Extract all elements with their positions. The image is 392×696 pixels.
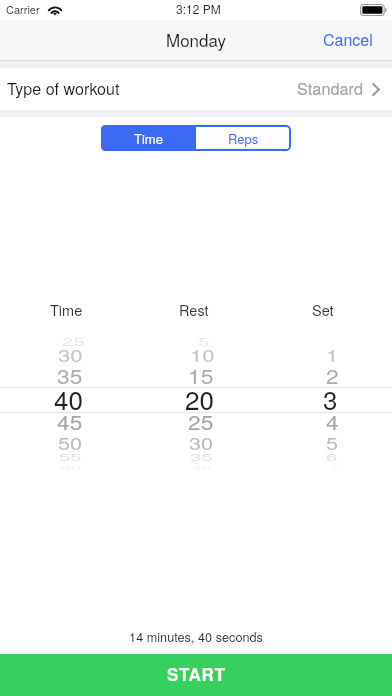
staticText: 3 xyxy=(323,380,338,417)
staticText: 14 minutes, 40 seconds xyxy=(0,627,392,645)
staticText: Time xyxy=(50,299,83,320)
staticText: Time xyxy=(134,129,163,148)
staticText: 45 xyxy=(57,407,83,436)
staticText: Type of workout xyxy=(7,77,120,100)
staticText: 20 xyxy=(185,380,214,417)
staticText: Reps xyxy=(228,129,259,148)
staticText: Cancel xyxy=(323,28,373,51)
staticText: 3:12 PM xyxy=(176,0,221,17)
staticText: 55 xyxy=(59,450,82,464)
staticText: 7 xyxy=(328,463,339,471)
staticText: 5 xyxy=(198,332,210,348)
staticText: Monday xyxy=(166,27,227,51)
staticText: 10 xyxy=(190,343,215,367)
staticText: 25 xyxy=(188,407,214,436)
staticText: 5 xyxy=(326,430,338,454)
staticText: Standard xyxy=(297,76,364,99)
staticText: 15 xyxy=(188,361,214,390)
staticText: START xyxy=(167,662,226,686)
button[interactable]: START xyxy=(0,654,392,696)
staticText: 2 xyxy=(326,361,339,390)
staticText: 1 xyxy=(326,343,339,367)
staticText: 35 xyxy=(190,450,213,464)
button[interactable]: Cancel xyxy=(307,20,392,61)
staticText: 35 xyxy=(57,361,83,390)
staticText: Set xyxy=(312,299,334,320)
staticText: Rest xyxy=(179,299,209,320)
staticText: 30 xyxy=(58,343,83,367)
staticText: 25 xyxy=(62,332,85,348)
staticText: 6 xyxy=(326,450,338,464)
button[interactable]: Reps xyxy=(196,125,291,151)
other: Wi-Fi xyxy=(46,2,64,16)
staticText: 30 xyxy=(189,430,213,454)
staticText: 40 xyxy=(54,380,83,417)
staticText: 40 xyxy=(191,463,213,471)
staticText: 60 xyxy=(60,463,82,471)
staticText: 50 xyxy=(58,430,82,454)
other: Battery full xyxy=(360,4,388,16)
staticText: 4 xyxy=(326,407,339,436)
button[interactable]: Type of workout xyxy=(0,68,392,110)
button[interactable]: Time xyxy=(101,125,196,151)
staticText: Carrier xyxy=(6,1,40,17)
